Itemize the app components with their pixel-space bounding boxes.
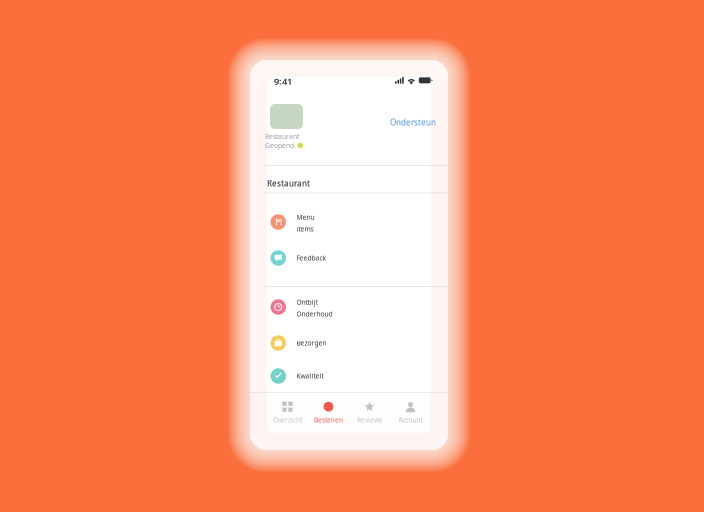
button[interactable]: Ontbijt bbox=[250, 291, 448, 323]
staticText: Ontbijt bbox=[296, 298, 317, 307]
button[interactable]: Overzicht bbox=[267, 399, 308, 427]
button[interactable]: Menu bbox=[250, 206, 448, 238]
staticText: Ondersteun bbox=[390, 117, 436, 128]
button[interactable]: Bestellen bbox=[308, 399, 349, 427]
button[interactable]: Kwaliteit bbox=[250, 360, 448, 392]
staticText: Kwaliteit bbox=[296, 371, 323, 380]
staticText: Overzicht bbox=[273, 415, 302, 424]
staticText: Bezorgen bbox=[296, 338, 326, 347]
staticText: Reviews bbox=[357, 415, 382, 424]
staticText: Feedback bbox=[296, 253, 326, 262]
button[interactable]: Reviews bbox=[349, 399, 390, 427]
button[interactable]: Ondersteun bbox=[390, 117, 436, 128]
staticText: Geopend bbox=[265, 141, 294, 150]
button[interactable]: Feedback bbox=[250, 242, 448, 274]
button[interactable]: Account bbox=[390, 399, 431, 427]
button[interactable]: Bezorgen bbox=[250, 327, 448, 359]
staticText: Menu bbox=[296, 213, 314, 222]
staticText: Onderhoud bbox=[296, 310, 332, 318]
staticText: Account bbox=[398, 415, 422, 424]
staticText: items bbox=[296, 225, 313, 233]
staticText: Restaurant bbox=[267, 178, 310, 189]
staticText: Restaurant bbox=[265, 132, 299, 141]
staticText: Bestellen bbox=[314, 415, 343, 424]
staticText: 9:41 bbox=[274, 75, 292, 87]
